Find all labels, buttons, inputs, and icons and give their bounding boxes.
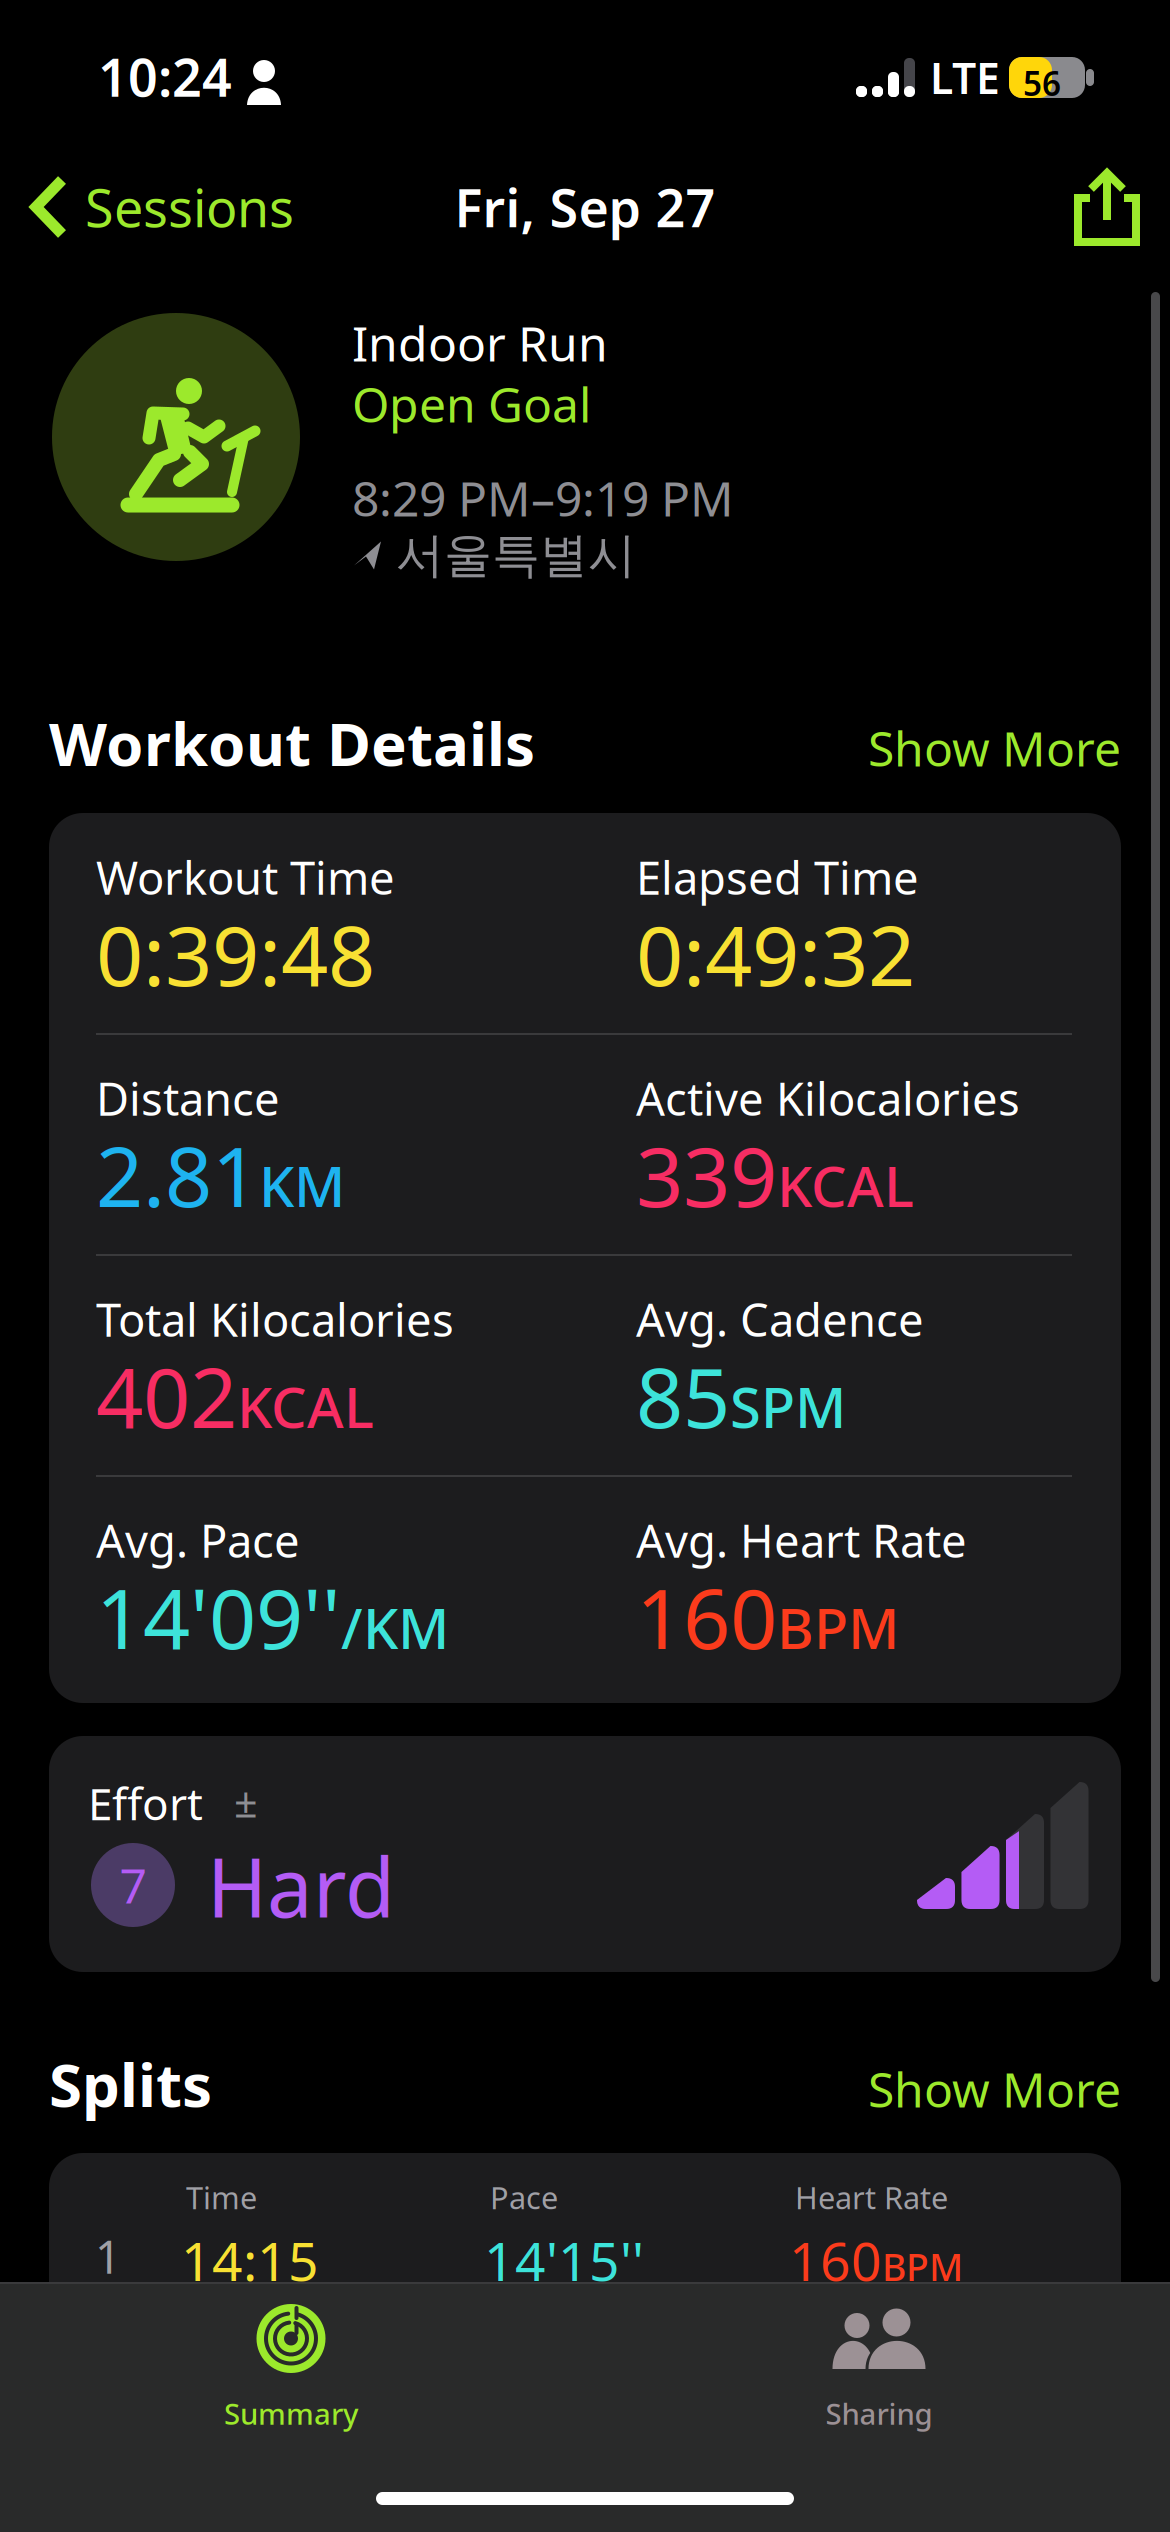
staticText: Indoor Run xyxy=(352,311,608,375)
staticText: 8:29 PM–9:19 PM xyxy=(352,466,734,530)
staticText: Sessions xyxy=(85,172,294,242)
staticText: 서울특별시 xyxy=(396,526,636,585)
staticText: KCAL xyxy=(237,1369,374,1443)
staticText: 1 xyxy=(95,2226,121,2286)
staticText: SPM xyxy=(730,1369,846,1443)
staticText: 85 xyxy=(636,1341,730,1451)
staticText: KM xyxy=(259,1148,345,1222)
staticText: Summary xyxy=(224,2394,358,2433)
staticText: Distance xyxy=(96,1068,280,1128)
staticText: Avg. Cadence xyxy=(636,1289,924,1349)
staticText: LTE xyxy=(930,49,1000,106)
staticText: Time xyxy=(186,2177,257,2218)
staticText: Splits xyxy=(49,2044,212,2124)
staticText: 160 xyxy=(636,1562,777,1672)
staticText: BPM xyxy=(777,1590,899,1664)
button[interactable]: Sessions xyxy=(0,152,318,262)
staticText: 0:49:32 xyxy=(636,899,915,1009)
staticText: Heart Rate xyxy=(795,2177,948,2218)
staticText: 2.81 xyxy=(96,1120,259,1230)
staticText: 14:15 xyxy=(181,2225,319,2296)
staticText: 14'15'' xyxy=(484,2225,644,2296)
staticText: Effort xyxy=(88,1774,203,1832)
staticText: 10:24 xyxy=(98,42,232,111)
staticText: Avg. Heart Rate xyxy=(636,1510,967,1570)
staticText: Open Goal xyxy=(352,372,591,436)
staticText: Total Kilocalories xyxy=(96,1289,454,1349)
button[interactable]: Summary xyxy=(0,2282,582,2458)
button[interactable]: Share xyxy=(1050,152,1170,262)
staticText: Hard xyxy=(207,1832,395,1940)
staticText: Elapsed Time xyxy=(636,847,919,907)
staticText: 56 xyxy=(1023,61,1061,105)
staticText: Workout Time xyxy=(96,847,395,907)
staticText: 0:39:48 xyxy=(96,899,375,1009)
staticText: Fri, Sep 27 xyxy=(454,172,715,242)
staticText: Pace xyxy=(490,2177,558,2218)
staticText: Show More xyxy=(868,2057,1121,2121)
staticText: Workout Details xyxy=(49,703,535,783)
staticText: /KM xyxy=(341,1590,449,1664)
staticText: 7 xyxy=(119,1853,146,1917)
staticText: BPM xyxy=(882,2242,963,2291)
staticText: Show More xyxy=(868,716,1121,780)
staticText: 402 xyxy=(96,1341,237,1451)
staticText: Sharing xyxy=(825,2394,932,2433)
staticText: Avg. Pace xyxy=(96,1510,300,1570)
staticText: ± xyxy=(234,1774,258,1829)
staticText: Active Kilocalories xyxy=(636,1068,1020,1128)
staticText: 339 xyxy=(636,1120,777,1230)
button[interactable]: Show More xyxy=(835,705,1133,791)
button[interactable]: Sharing xyxy=(588,2282,1170,2458)
staticText: 160 xyxy=(789,2225,882,2296)
button[interactable]: Show More xyxy=(835,2046,1133,2132)
staticText: KCAL xyxy=(777,1148,914,1222)
staticText: 14'09'' xyxy=(96,1562,341,1672)
